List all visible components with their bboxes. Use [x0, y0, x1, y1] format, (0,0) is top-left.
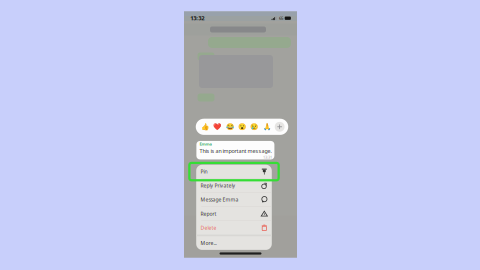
- staticText: 65: [279, 15, 283, 21]
- staticText: This is an important message.: [199, 147, 271, 154]
- button[interactable]: More reactions: [274, 119, 286, 135]
- staticText: Reply Privately: [200, 182, 235, 189]
- staticText: 👍: [201, 123, 209, 131]
- button[interactable]: Report: [196, 207, 272, 221]
- button[interactable]: React: [199, 119, 211, 135]
- staticText: Report: [200, 210, 216, 217]
- button[interactable]: React: [211, 119, 223, 135]
- button[interactable]: React: [260, 119, 273, 135]
- button[interactable]: React: [224, 119, 236, 135]
- button[interactable]: More...: [196, 236, 272, 250]
- button[interactable]: React: [248, 119, 260, 135]
- staticText: ❤️: [213, 123, 221, 131]
- button[interactable]: Message Emma: [196, 193, 272, 206]
- staticText: 😮: [238, 123, 246, 131]
- staticText: Delete: [200, 224, 216, 231]
- staticText: 13:32: [190, 14, 204, 22]
- staticText: Message Emma: [200, 196, 238, 203]
- staticText: Pin: [200, 168, 207, 175]
- button[interactable]: Delete: [196, 221, 272, 235]
- staticText: 13:31: [263, 154, 272, 160]
- button[interactable]: Pin: [196, 165, 272, 178]
- staticText: 😂: [226, 123, 234, 131]
- staticText: 😢: [250, 123, 258, 131]
- button[interactable]: Reply Privately: [196, 179, 272, 192]
- staticText: More...: [200, 240, 216, 246]
- staticText: 🙏: [263, 123, 271, 131]
- button[interactable]: React: [236, 119, 248, 135]
- staticText: Emma: [199, 141, 211, 147]
